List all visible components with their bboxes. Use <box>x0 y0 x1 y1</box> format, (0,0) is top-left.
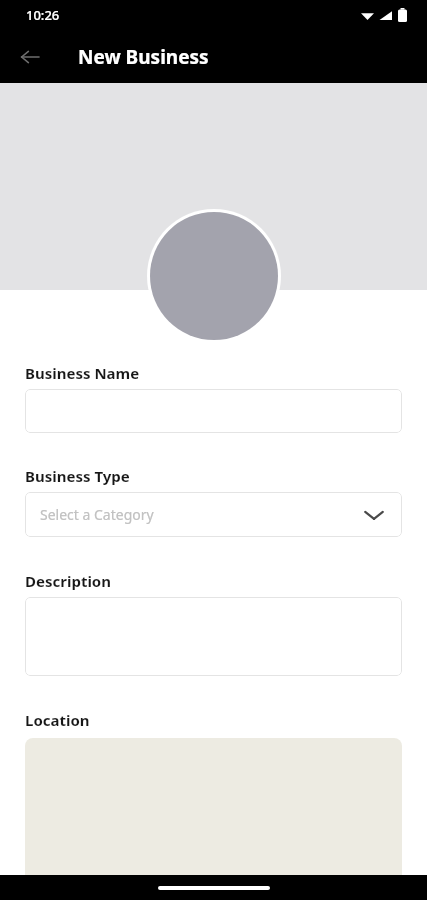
staticText: Select a Category <box>40 505 154 524</box>
staticText: 10:26 <box>26 6 60 24</box>
button[interactable]: Text input <box>25 597 402 676</box>
button[interactable]: Add business photo <box>150 212 278 340</box>
button[interactable]: Back <box>10 37 50 77</box>
staticText: Location <box>25 710 90 730</box>
staticText: New Business <box>78 44 209 70</box>
staticText: Business Type <box>25 466 130 486</box>
staticText: Business Name <box>25 363 140 383</box>
button[interactable]: Text input <box>25 389 402 433</box>
button[interactable]: Select a Category <box>25 492 402 537</box>
staticText: Description <box>25 571 111 591</box>
